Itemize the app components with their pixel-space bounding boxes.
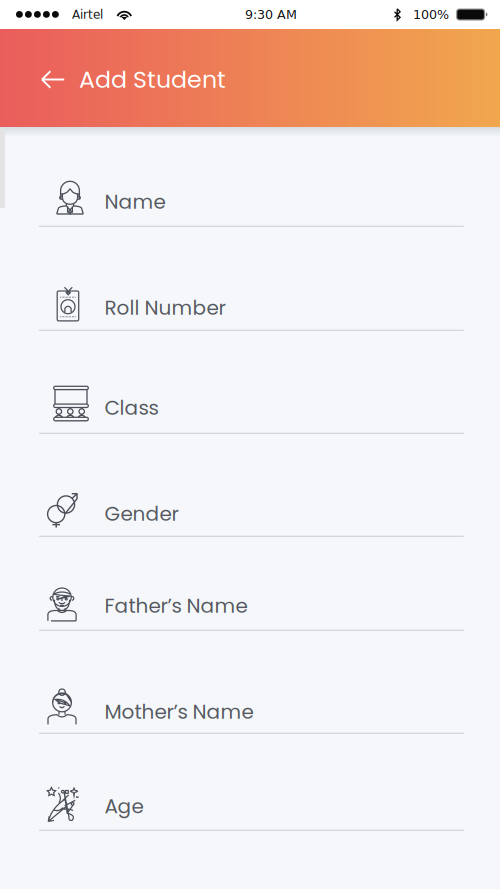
button[interactable]: Back (31, 57, 75, 101)
button[interactable]: Class (0, 331, 500, 434)
staticText: 9:30 AM (245, 7, 297, 22)
button[interactable]: Mother’s Name (0, 631, 500, 734)
staticText: Gender (104, 500, 178, 528)
staticText: Father’s Name (104, 592, 247, 620)
button[interactable]: Age (0, 734, 500, 831)
staticText: Class (104, 394, 158, 422)
button[interactable]: Gender (0, 434, 500, 537)
button[interactable]: Name (0, 127, 500, 227)
staticText: Add Student (79, 63, 226, 96)
staticText: Name (104, 188, 165, 216)
staticText: Age (104, 792, 143, 820)
button[interactable]: Roll Number (0, 227, 500, 331)
button[interactable]: Father’s Name (0, 537, 500, 631)
staticText: Roll Number (104, 294, 225, 322)
staticText: Airtel (72, 7, 103, 21)
staticText: 100% (413, 7, 449, 22)
staticText: Mother’s Name (104, 698, 253, 726)
